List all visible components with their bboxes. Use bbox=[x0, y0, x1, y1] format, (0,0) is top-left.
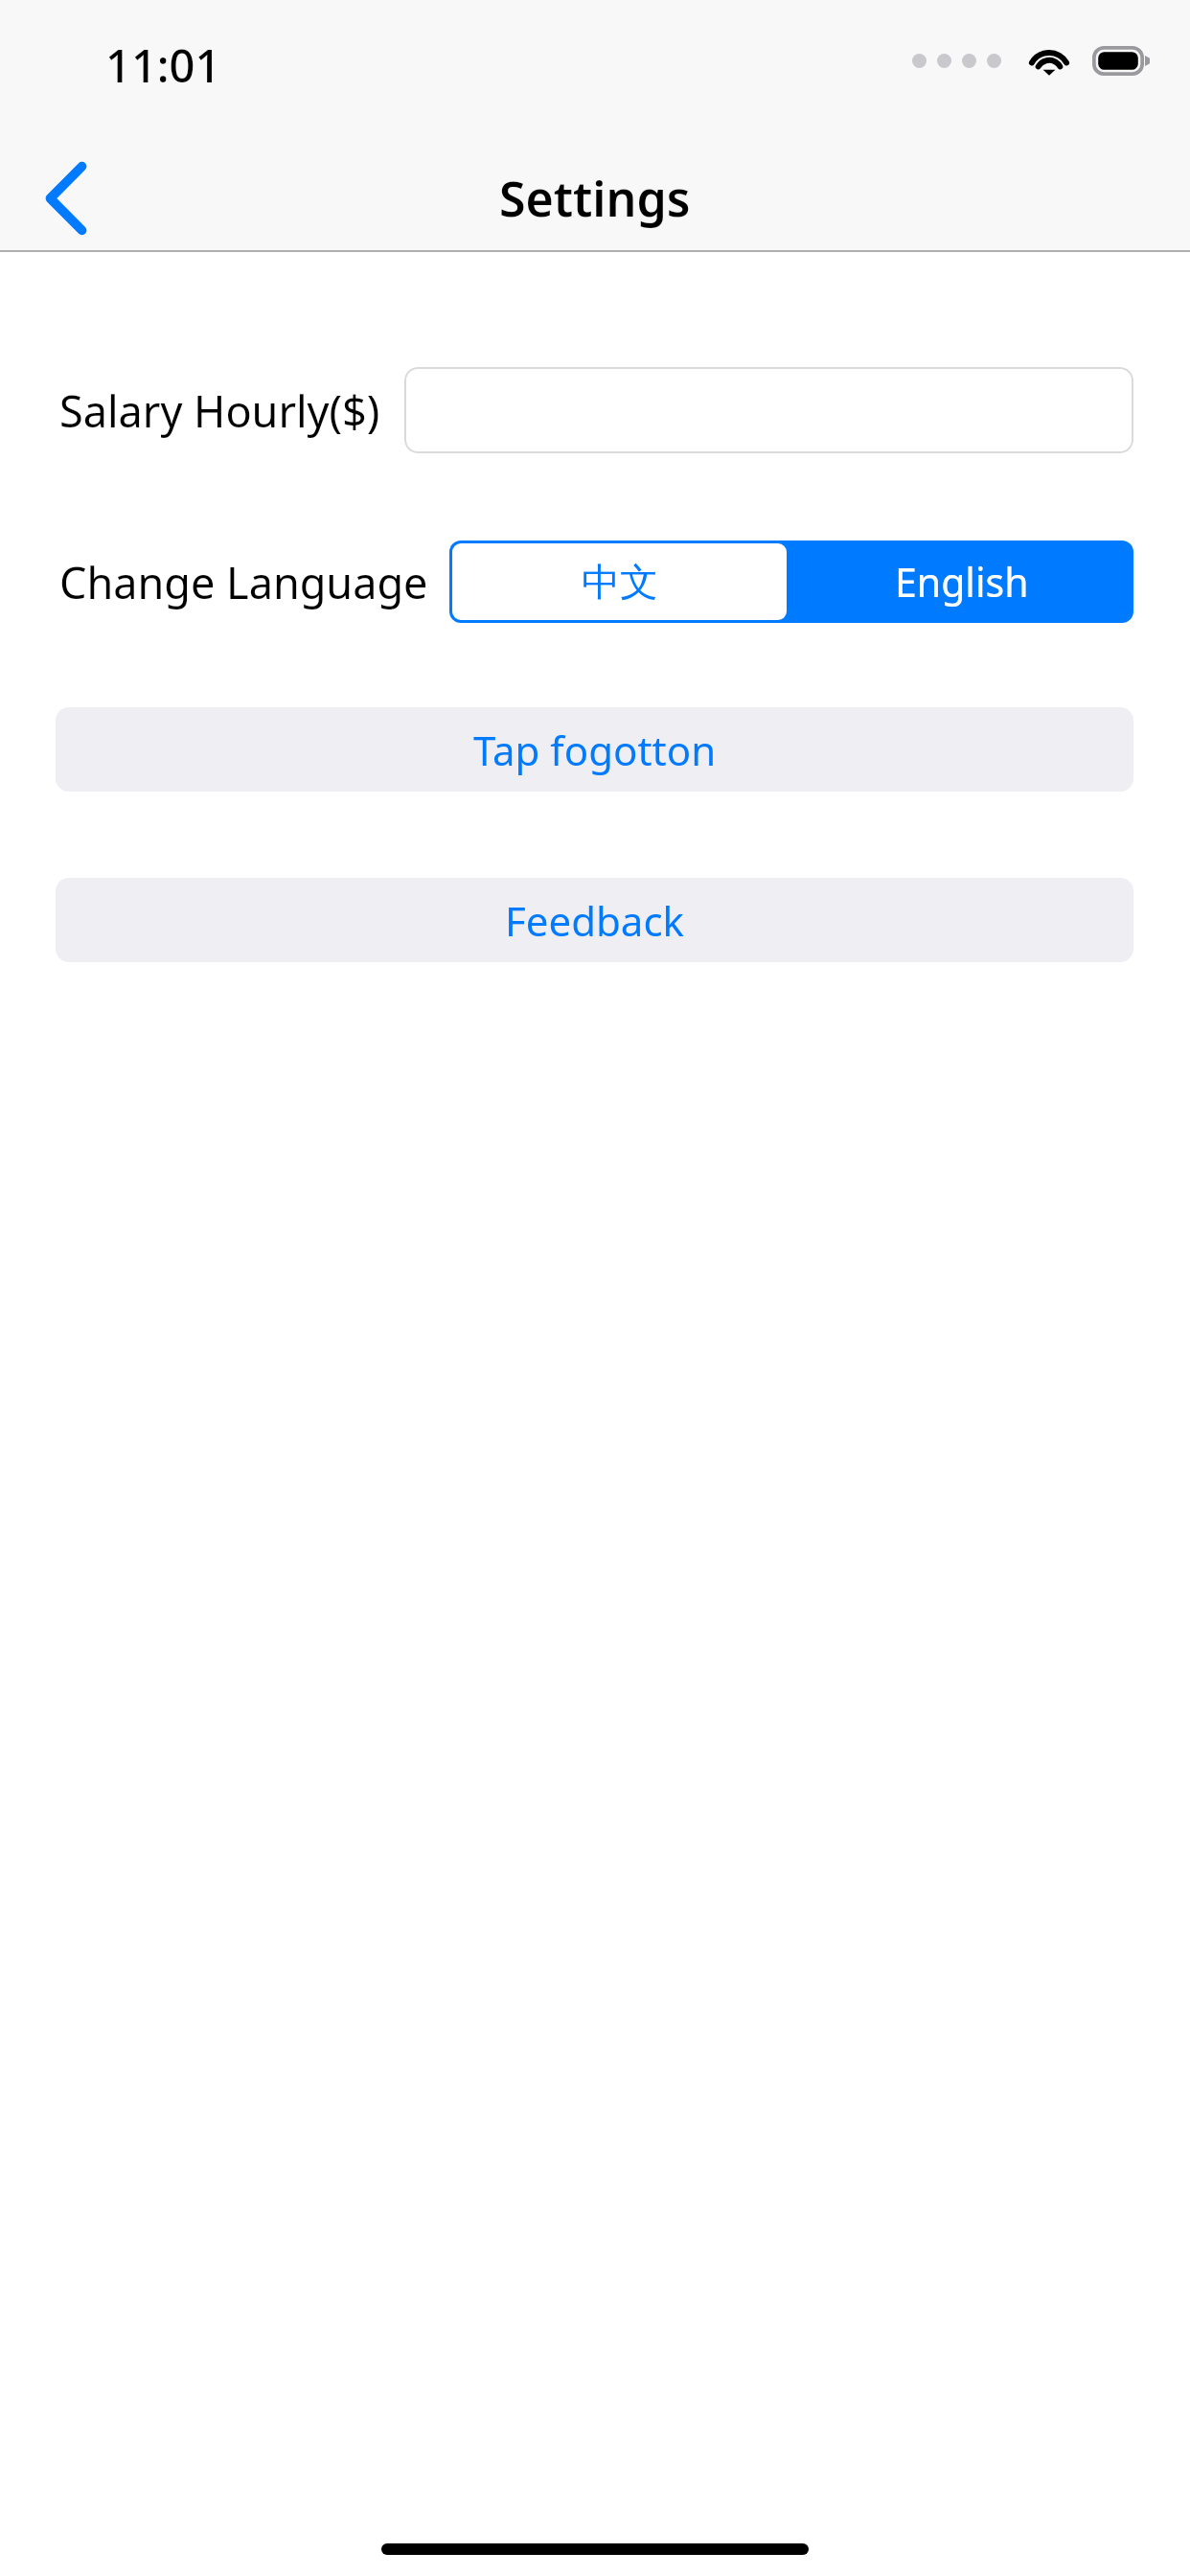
button[interactable]: Feedback bbox=[56, 878, 1133, 962]
staticText: 11:01 bbox=[105, 34, 221, 96]
staticText: Change Language bbox=[59, 553, 428, 611]
button[interactable]: Tap fogotton bbox=[56, 707, 1133, 792]
button[interactable] bbox=[404, 367, 1133, 453]
staticText: 中文 bbox=[582, 558, 658, 606]
staticText: Settings bbox=[499, 166, 691, 231]
staticText: English bbox=[895, 555, 1029, 609]
button[interactable]: English bbox=[790, 540, 1133, 623]
staticText: Salary Hourly($) bbox=[59, 381, 380, 440]
staticText: Tap fogotton bbox=[473, 723, 717, 777]
button[interactable]: Back bbox=[25, 157, 107, 240]
button[interactable]: 中文 bbox=[452, 543, 787, 620]
staticText: Feedback bbox=[505, 893, 684, 948]
